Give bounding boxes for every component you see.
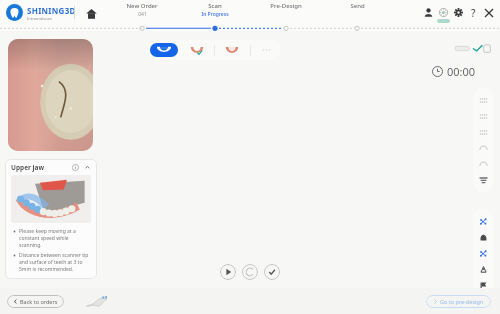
staticText: Go to pre-design xyxy=(440,298,484,305)
staticText: Send xyxy=(350,2,365,10)
staticText: Please keep moving at a constant speed w… xyxy=(19,228,90,249)
staticText: 041 xyxy=(138,11,147,18)
staticText: Scan xyxy=(208,2,222,10)
button[interactable]: Lower jaw scan xyxy=(186,43,208,57)
button[interactable]: Cavity detect xyxy=(473,229,494,245)
staticText: Back to orders xyxy=(20,298,58,305)
button[interactable]: 00:00 xyxy=(432,64,476,79)
button[interactable]: Help xyxy=(466,5,481,20)
button[interactable]: Layers xyxy=(473,172,494,188)
staticText: SHINING3D xyxy=(27,5,76,16)
button[interactable]: Align xyxy=(473,245,494,261)
button[interactable]: Account xyxy=(421,5,436,20)
button[interactable]: New Order xyxy=(109,2,175,18)
staticText: Pre-Design xyxy=(270,2,302,10)
button[interactable]: Tooth view 1 xyxy=(473,92,494,108)
button[interactable]: Redo scan xyxy=(242,264,258,280)
button[interactable]: Measure xyxy=(473,261,494,277)
button[interactable]: Confirm scan xyxy=(264,264,280,280)
button[interactable]: Annotate xyxy=(473,277,494,293)
button[interactable]: Home xyxy=(82,4,100,22)
button[interactable]: Tooth view 3 xyxy=(473,124,494,140)
button[interactable]: Upper jaw xyxy=(11,159,91,175)
button[interactable]: Tooth view 2 xyxy=(473,108,494,124)
staticText: In Progress xyxy=(201,11,229,18)
button[interactable]: Pre-Design xyxy=(253,2,319,11)
button[interactable]: Back to orders xyxy=(7,295,64,308)
staticText: Intraoralscan xyxy=(27,16,52,21)
button[interactable]: More scan options xyxy=(257,43,275,57)
button[interactable]: Side view xyxy=(473,140,494,156)
button[interactable]: Scan xyxy=(182,2,248,18)
button[interactable]: Bite scan xyxy=(221,43,243,57)
button[interactable]: Upper jaw scan xyxy=(150,43,178,57)
button[interactable]: Play scan xyxy=(220,264,236,280)
button[interactable]: Close xyxy=(481,5,496,20)
button[interactable]: AI assist xyxy=(473,213,494,229)
staticText: Upper jaw xyxy=(11,163,45,172)
button[interactable]: Device status xyxy=(436,5,451,20)
button[interactable]: Front view xyxy=(473,156,494,172)
staticText: Distance between scanner tip and surface… xyxy=(19,252,90,273)
button[interactable]: Send xyxy=(324,2,390,11)
staticText: ? xyxy=(471,6,476,20)
button[interactable]: SHINING3D xyxy=(6,4,76,21)
staticText: New Order xyxy=(126,2,158,10)
staticText: 00:00 xyxy=(447,64,476,79)
button[interactable]: Settings xyxy=(451,5,466,20)
button[interactable]: Camera preview xyxy=(8,39,93,151)
button[interactable]: Scanner tip connected xyxy=(455,43,491,55)
button[interactable]: Go to pre-design xyxy=(426,295,491,308)
